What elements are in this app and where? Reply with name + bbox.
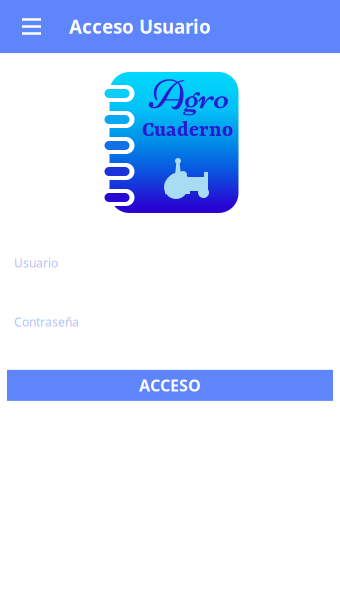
staticText: ACCESO xyxy=(139,375,201,396)
staticText: Acceso Usuario xyxy=(69,14,211,39)
staticText: Contraseña xyxy=(14,314,79,330)
staticText: Agro xyxy=(149,70,230,120)
staticText: Cuaderno xyxy=(142,119,233,142)
button[interactable]: ACCESO xyxy=(7,370,333,401)
button[interactable]: Menu xyxy=(0,0,52,52)
staticText: Usuario xyxy=(14,255,58,271)
